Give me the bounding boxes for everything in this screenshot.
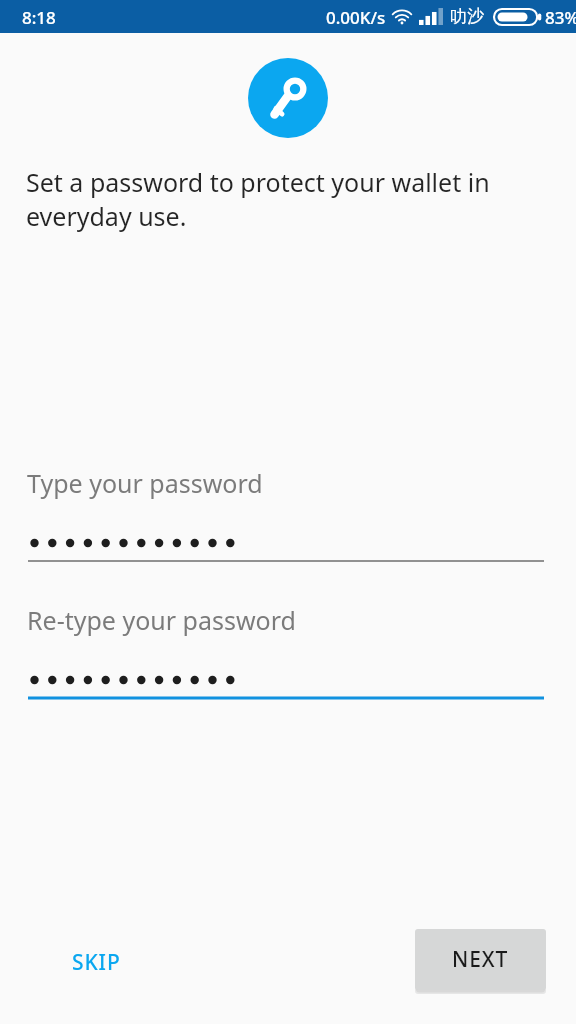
staticText: Re-type your password xyxy=(27,603,296,637)
staticText: Type your password xyxy=(27,466,263,500)
staticText: Set a password to protect your wallet in… xyxy=(26,165,526,234)
staticText: SKIP xyxy=(72,948,121,977)
button[interactable] xyxy=(28,643,544,701)
staticText: 8:18 xyxy=(22,6,56,29)
button[interactable]: SKIP xyxy=(48,934,145,991)
staticText: 0.00K/s xyxy=(326,6,386,29)
staticText: 83% xyxy=(545,6,576,29)
button[interactable] xyxy=(28,506,544,564)
other: Password key xyxy=(248,58,328,138)
button[interactable]: NEXT xyxy=(415,929,546,990)
staticText: NEXT xyxy=(452,945,509,974)
staticText: 叻沙 xyxy=(450,6,484,27)
